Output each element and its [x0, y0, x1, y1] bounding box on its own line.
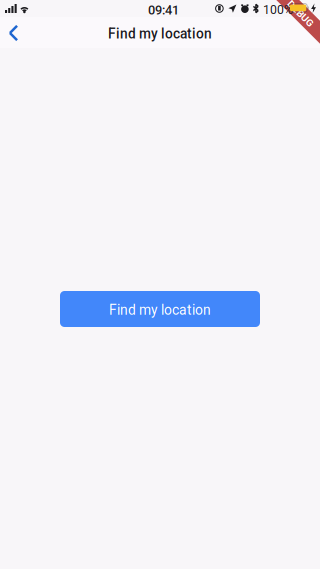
staticText: Find my location: [109, 302, 211, 318]
staticText: Find my location: [108, 26, 212, 42]
staticText: 09:41: [148, 2, 179, 17]
staticText: 100%: [263, 2, 293, 17]
button[interactable]: Find my location: [60, 291, 260, 327]
staticText: DEBUG: [282, 14, 315, 26]
button[interactable]: Back: [0, 20, 26, 46]
